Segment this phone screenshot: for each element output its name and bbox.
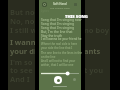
- staticText: t you: [84, 65, 104, 75]
- staticText: The one line to the lines in the one: [41, 51, 83, 55]
- staticText: I wanna: [10, 37, 41, 47]
- staticText: THIS SONG: [65, 14, 88, 20]
- staticText: to see: [10, 65, 33, 75]
- staticText: ants: [84, 46, 101, 56]
- staticText: But no,: [10, 7, 37, 17]
- staticText: Song that I'm singing: [41, 25, 74, 29]
- staticText: And I: [10, 74, 30, 84]
- staticText: I still wanna be your friend he said y: [41, 37, 83, 41]
- staticText: on the line: [41, 55, 56, 59]
- staticText: within, that I will be one: [41, 63, 74, 67]
- staticText: And I will not to find your: [41, 59, 76, 63]
- button[interactable]: Play: [54, 76, 62, 84]
- staticText: Song that I'm singing: [41, 21, 74, 25]
- staticText: no boy: [84, 25, 110, 35]
- staticText: Soft Hand: [53, 2, 67, 6]
- staticText: I'm so: [10, 57, 33, 67]
- staticText: your side the line that I showed: [41, 46, 83, 50]
- staticText: Song that I'm singing now: [41, 17, 82, 21]
- staticText: I still w: [10, 25, 37, 35]
- staticText: Stay the truth: [41, 33, 63, 37]
- staticText: The Chosen Ones: [50, 6, 70, 9]
- staticText: But, I'm the line that: [41, 29, 73, 33]
- button[interactable]: Options: [73, 78, 76, 81]
- button[interactable]: Back: [42, 2, 47, 7]
- staticText: No, no,: [10, 16, 37, 26]
- staticText: Where the real side is here and: [41, 42, 83, 46]
- staticText: your di: [10, 46, 37, 56]
